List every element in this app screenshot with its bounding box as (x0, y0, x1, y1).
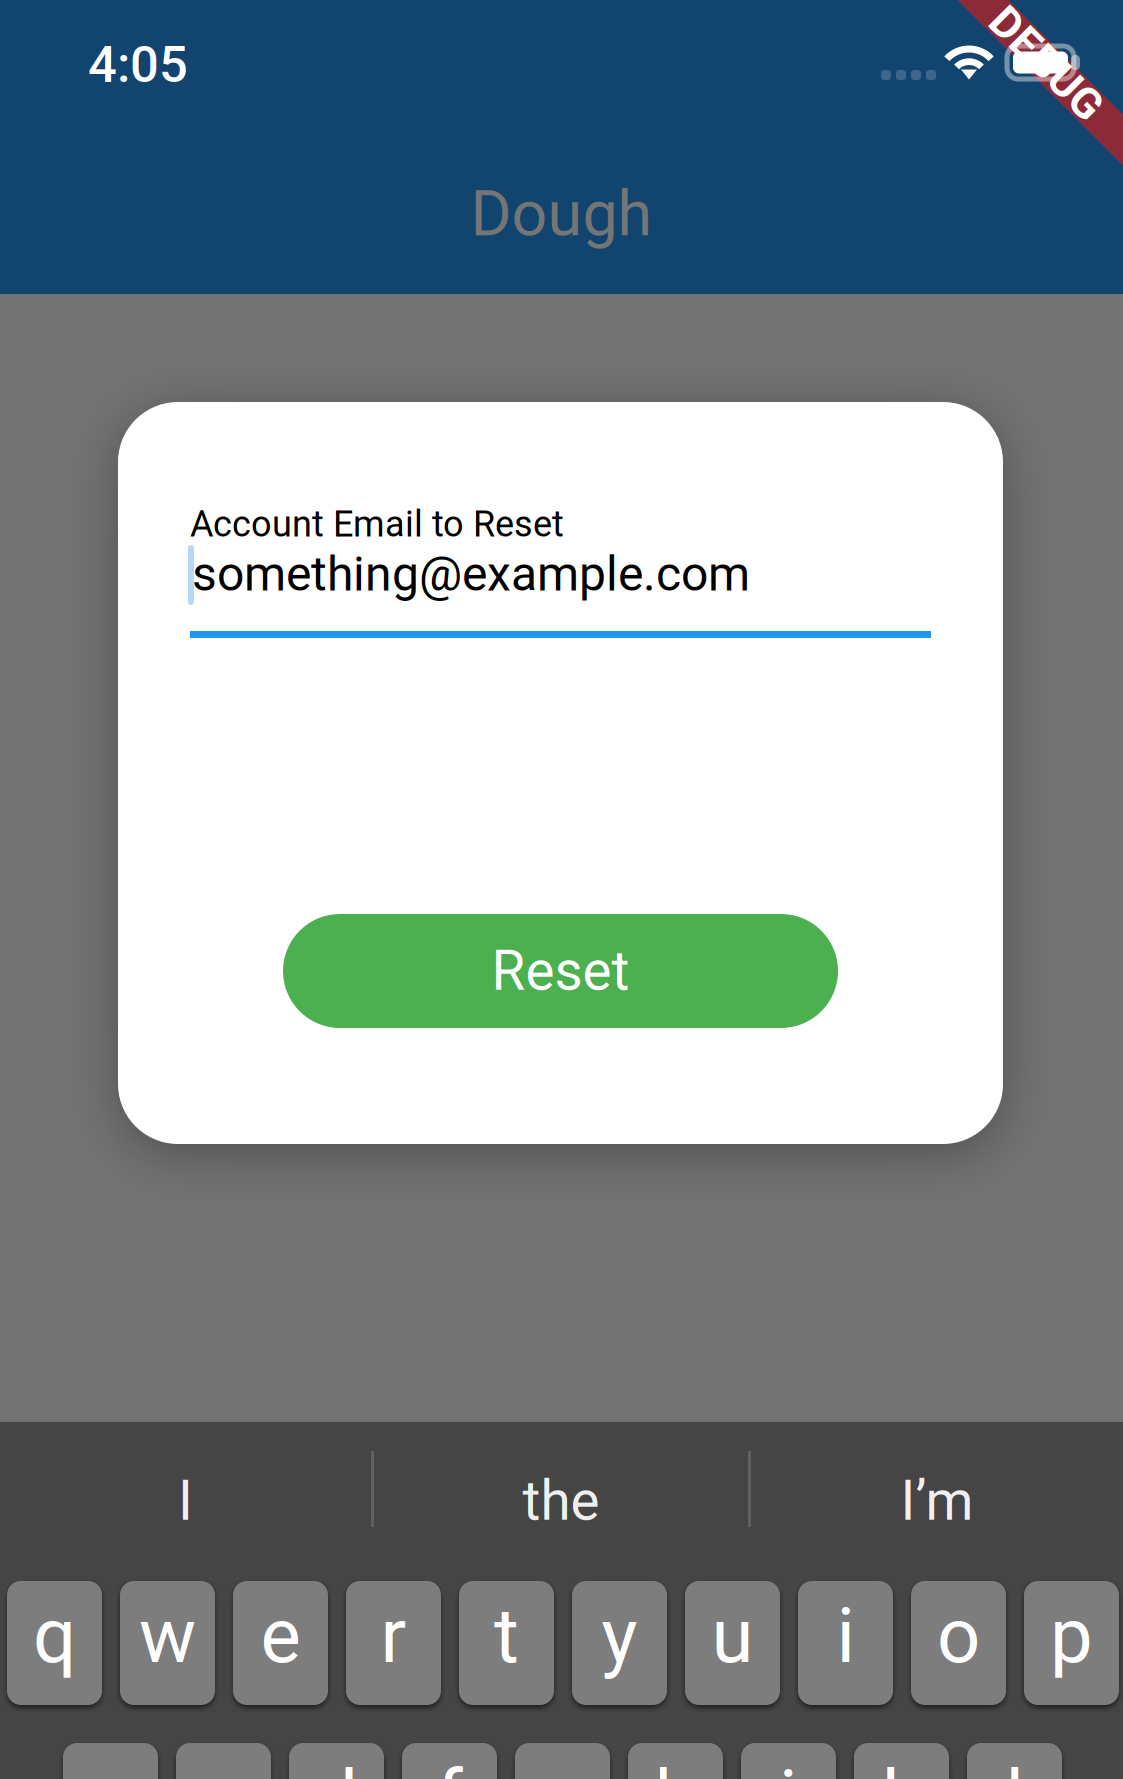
button[interactable]: a (63, 1743, 158, 1779)
staticText: Reset (491, 939, 629, 1003)
button[interactable]: w (120, 1581, 215, 1705)
button[interactable]: f (402, 1743, 497, 1779)
button[interactable]: y (572, 1581, 667, 1705)
staticText: h (654, 1753, 696, 1779)
staticText: I (178, 1469, 193, 1533)
button[interactable]: j (741, 1743, 836, 1779)
button[interactable]: h (628, 1743, 723, 1779)
button[interactable]: d (289, 1743, 384, 1779)
staticText: o (937, 1591, 980, 1681)
staticText: l (1005, 1753, 1023, 1779)
staticText: k (882, 1753, 921, 1779)
button[interactable]: I’m (751, 1451, 1123, 1527)
button[interactable]: the (374, 1451, 748, 1527)
button[interactable]: k (854, 1743, 949, 1779)
staticText: y (601, 1591, 637, 1681)
staticText: DEBUG (982, 22, 1123, 74)
staticText: f (436, 1753, 462, 1779)
button[interactable]: q (7, 1581, 102, 1705)
staticText: I’m (900, 1469, 973, 1533)
staticText: t (494, 1591, 519, 1681)
staticText: r (380, 1591, 406, 1681)
button[interactable]: u (685, 1581, 780, 1705)
staticText: i (836, 1591, 854, 1681)
staticText: p (1050, 1591, 1093, 1681)
button[interactable]: s (176, 1743, 271, 1779)
button[interactable]: l (967, 1743, 1062, 1779)
button[interactable]: r (346, 1581, 441, 1705)
staticText: j (779, 1753, 797, 1779)
button[interactable]: Reset (283, 914, 838, 1028)
staticText: d (315, 1753, 358, 1779)
staticText: q (33, 1591, 76, 1681)
staticText: Account Email to Reset (190, 503, 564, 545)
staticText: 4:05 (88, 35, 188, 94)
button[interactable]: e (233, 1581, 328, 1705)
staticText: w (139, 1591, 196, 1681)
staticText: u (711, 1591, 753, 1681)
button[interactable]: I (0, 1451, 371, 1527)
button[interactable]: i (798, 1581, 893, 1705)
staticText: something@example.com (192, 546, 750, 602)
button[interactable]: p (1024, 1581, 1119, 1705)
button[interactable]: g (515, 1743, 610, 1779)
staticText: e (260, 1591, 300, 1681)
staticText: the (522, 1469, 599, 1533)
staticText: Dough (470, 177, 652, 250)
button[interactable]: o (911, 1581, 1006, 1705)
button[interactable]: t (459, 1581, 554, 1705)
